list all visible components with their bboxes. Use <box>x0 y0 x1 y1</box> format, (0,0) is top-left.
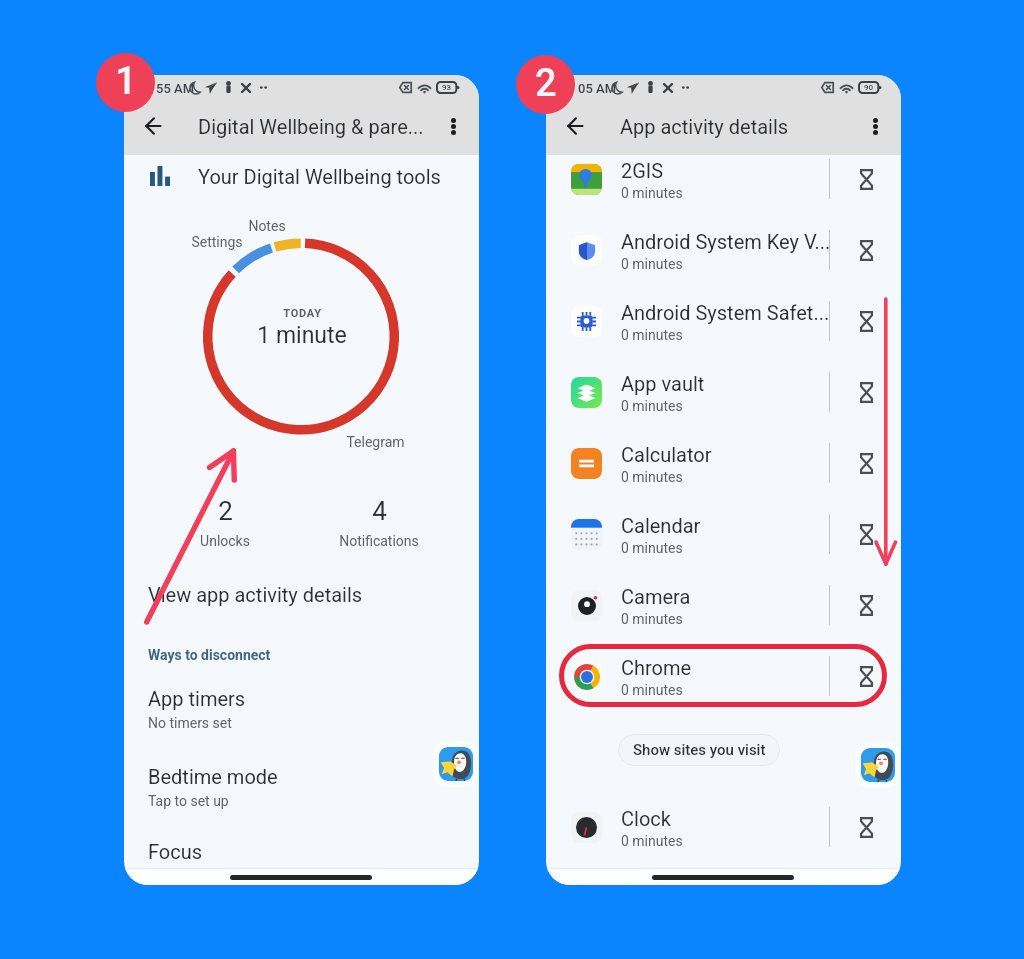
staticText: 2GIS <box>621 159 664 182</box>
button[interactable]: App timers <box>124 683 479 735</box>
staticText: Show sites you visit <box>633 741 766 759</box>
button[interactable]: Set app timer <box>840 512 892 556</box>
staticText: 93 <box>442 83 452 92</box>
button[interactable]: More options <box>433 106 473 146</box>
staticText: Settings <box>191 234 243 250</box>
staticText: Tap to set up <box>148 793 229 809</box>
staticText: Android System Key V... <box>621 230 831 253</box>
staticText: 0 minutes <box>621 469 683 485</box>
button[interactable] <box>546 428 901 499</box>
staticText: Calendar <box>621 514 701 537</box>
button[interactable] <box>546 641 901 712</box>
staticText: App vault <box>621 372 705 395</box>
staticText: 1 <box>115 59 137 104</box>
staticText: Notifications <box>339 533 419 549</box>
staticText: 05 AM <box>578 81 616 96</box>
staticText: Android System Safet... <box>621 301 830 324</box>
button[interactable] <box>546 570 901 641</box>
button[interactable]: Set app timer <box>840 441 892 485</box>
staticText: View app activity details <box>148 583 363 606</box>
staticText: Your Digital Wellbeing tools <box>198 165 441 188</box>
staticText: Digital Wellbeing & pare... <box>198 115 424 138</box>
staticText: Focus <box>148 840 203 863</box>
button[interactable]: Set app timer <box>840 654 892 698</box>
staticText: Unlocks <box>200 533 250 549</box>
staticText: Ways to disconnect <box>148 647 271 663</box>
button[interactable]: Bedtime mode <box>124 761 479 813</box>
staticText: 0 minutes <box>621 327 683 343</box>
button[interactable] <box>546 215 901 286</box>
button[interactable] <box>546 792 901 863</box>
button[interactable] <box>546 357 901 428</box>
button[interactable]: View app activity details <box>124 578 479 610</box>
staticText: No timers set <box>148 715 232 731</box>
staticText: 55 AM <box>156 81 194 96</box>
button[interactable]: Set app timer <box>840 583 892 627</box>
button[interactable] <box>546 286 901 357</box>
staticText: Chrome <box>621 656 692 679</box>
staticText: 2 <box>535 61 557 106</box>
button[interactable]: Focus <box>124 835 479 867</box>
staticText: Calculator <box>621 443 712 466</box>
button[interactable] <box>546 499 901 570</box>
staticText: 0 minutes <box>621 833 683 849</box>
staticText: App activity details <box>620 115 789 138</box>
button[interactable]: Back <box>133 106 173 146</box>
button[interactable]: Back <box>555 106 595 146</box>
button[interactable]: Set app timer <box>840 157 892 201</box>
staticText: 0 minutes <box>621 398 683 414</box>
button[interactable]: Set app timer <box>840 370 892 414</box>
staticText: Notes <box>248 218 286 234</box>
button[interactable]: More options <box>855 106 895 146</box>
staticText: 1 minute <box>257 322 347 349</box>
button[interactable]: Set app timer <box>840 228 892 272</box>
button[interactable] <box>546 144 901 215</box>
staticText: 0 minutes <box>621 185 683 201</box>
staticText: App timers <box>148 687 246 710</box>
button[interactable]: Set app timer <box>840 299 892 343</box>
staticText: Contacts <box>621 878 702 885</box>
staticText: Telegram <box>346 434 405 450</box>
staticText: 0 minutes <box>621 682 683 698</box>
staticText: 2 <box>218 496 233 526</box>
staticText: 4 <box>372 496 387 526</box>
staticText: 0 minutes <box>621 540 683 556</box>
button[interactable]: Show sites you visit <box>618 734 780 766</box>
staticText: Clock <box>621 807 671 830</box>
staticText: TODAY <box>283 307 322 320</box>
staticText: 0 minutes <box>621 256 683 272</box>
staticText: 0 minutes <box>621 611 683 627</box>
button[interactable]: Set app timer <box>840 805 892 849</box>
staticText: Camera <box>621 585 691 608</box>
staticText: 90 <box>864 83 874 92</box>
staticText: Bedtime mode <box>148 765 278 788</box>
